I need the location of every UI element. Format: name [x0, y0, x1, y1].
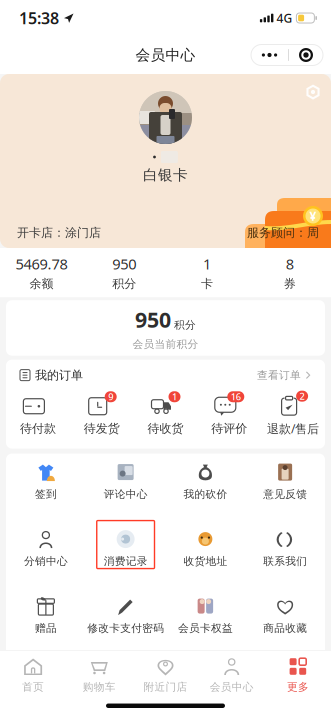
staticText: 购物车	[83, 680, 116, 694]
staticText: 1	[172, 391, 177, 403]
staticText: 意见反馈	[263, 488, 307, 501]
button[interactable]: 2	[261, 391, 325, 436]
staticText: 950	[135, 305, 171, 333]
button[interactable]: 16	[197, 391, 261, 436]
staticText: 余额	[29, 276, 53, 291]
button[interactable]: 分销中心	[6, 521, 86, 569]
button[interactable]: 联系我们	[245, 521, 325, 569]
button[interactable]: 购物车	[66, 656, 132, 694]
button[interactable]: 修改卡支付密码	[86, 588, 166, 636]
staticText: 商品收藏	[263, 622, 307, 635]
button[interactable]: 意见反馈	[245, 454, 325, 502]
staticText: 消费记录	[104, 555, 148, 568]
staticText: 联系我们	[263, 555, 307, 568]
button[interactable]: 评论中心	[86, 454, 166, 502]
button[interactable]: 我的砍价	[165, 454, 245, 502]
staticText: 开卡店：涂门店	[17, 225, 101, 240]
staticText: 白银卡	[143, 166, 188, 184]
staticText: 我的订单	[35, 368, 83, 382]
staticText: 我的砍价	[183, 488, 227, 501]
staticText: ¥	[309, 208, 316, 224]
staticText: 16	[231, 391, 241, 403]
staticText: 卡	[201, 276, 213, 291]
button[interactable]: 我的订单	[6, 360, 325, 391]
staticText: 券	[284, 276, 296, 291]
staticText: 9	[108, 391, 113, 403]
staticText: 会员中心	[135, 46, 195, 64]
staticText: 赠品	[35, 622, 57, 635]
staticText: 2	[300, 390, 305, 402]
button[interactable]: 附近门店	[132, 656, 199, 694]
button[interactable]: 更多	[265, 656, 331, 694]
button[interactable]: 赠品	[6, 588, 86, 636]
button[interactable]: 待付款	[6, 391, 70, 436]
button[interactable]: 收货地址	[165, 521, 245, 569]
button[interactable]: 商品收藏	[245, 588, 325, 636]
staticText: 会员卡权益	[178, 622, 233, 635]
staticText: 950	[112, 254, 136, 273]
button[interactable]: 消费记录	[86, 521, 166, 569]
staticText: 分销中心	[24, 555, 68, 568]
staticText: 待付款	[20, 421, 56, 436]
staticText: 首页	[22, 680, 44, 694]
staticText: 积分	[174, 318, 196, 331]
staticText: 4G	[276, 10, 292, 26]
staticText: 1	[203, 254, 211, 273]
button[interactable]: 设置	[301, 80, 325, 104]
staticText: 15:38	[19, 7, 59, 29]
staticText: 收货地址	[183, 555, 227, 568]
staticText: 查看订单	[257, 369, 301, 382]
staticText: 附近门店	[143, 680, 187, 694]
staticText: 8	[286, 254, 294, 273]
staticText: 修改卡支付密码	[87, 622, 164, 635]
staticText: 评论中心	[104, 488, 148, 501]
staticText: 待评价	[211, 421, 247, 436]
staticText: 服务顾问：周	[247, 225, 319, 240]
staticText: 更多	[287, 680, 309, 694]
staticText: 5469.78	[15, 254, 67, 273]
button[interactable]: 首页	[0, 656, 66, 694]
staticText: 待收货	[147, 421, 183, 436]
staticText: 会员中心	[210, 680, 254, 694]
staticText: 退款/售后	[267, 421, 319, 436]
button[interactable]: 更多功能	[251, 44, 323, 65]
staticText: 签到	[35, 488, 57, 501]
button[interactable]: 签到	[6, 454, 86, 502]
button[interactable]: 会员中心	[199, 656, 265, 694]
staticText: 会员当前积分	[132, 337, 198, 351]
staticText: 积分	[112, 276, 136, 291]
staticText: 待发货	[84, 421, 120, 436]
button[interactable]: 会员卡权益	[165, 588, 245, 636]
button[interactable]: 9	[70, 391, 134, 436]
button[interactable]: 1	[134, 391, 197, 436]
